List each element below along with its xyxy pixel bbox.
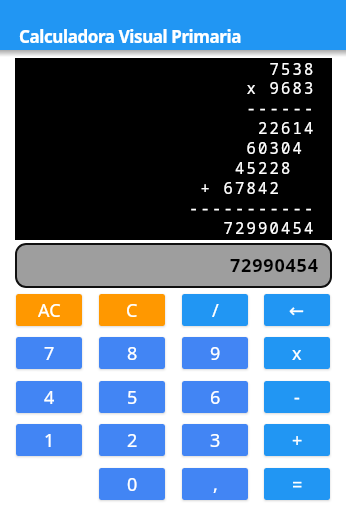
button[interactable]: 7 [16,337,82,369]
button[interactable]: 4 [16,381,82,413]
button[interactable]: 1 [16,424,82,456]
button[interactable]: 3 [182,424,248,456]
staticText: + [292,428,303,453]
staticText: 8 [127,341,138,366]
button[interactable]: 72990454 [15,243,332,288]
staticText: 5 [127,385,138,410]
button[interactable]: 9 [182,337,248,369]
staticText: 3 [210,428,221,453]
button[interactable]: - [264,381,330,413]
staticText: 6 [210,385,221,410]
staticText: 4 [44,385,55,410]
staticText: - [294,385,300,410]
staticText: 7538 x 9683 ------ 22614 60304 45228 + 6… [189,58,316,239]
button[interactable]: AC [16,294,82,326]
staticText: Calculadora Visual Primaria [19,25,241,48]
button[interactable]: 8 [99,337,165,369]
button[interactable]: 2 [99,424,165,456]
button[interactable]: , [182,468,248,500]
staticText: AC [38,298,61,323]
button[interactable]: 5 [99,381,165,413]
staticText: x [292,341,302,366]
staticText: 9 [210,341,221,366]
button[interactable]: + [264,424,330,456]
staticText: 1 [44,428,55,453]
button[interactable]: C [99,294,165,326]
staticText: / [212,298,219,323]
button[interactable]: 6 [182,381,248,413]
staticText: 2 [127,428,138,453]
staticText: 0 [127,472,138,497]
staticText: 72990454 [230,253,319,278]
button[interactable]: = [264,468,330,500]
staticText: C [126,298,138,323]
button[interactable]: ← [264,294,330,326]
staticText: , [213,472,218,497]
staticText: = [292,472,303,497]
staticText: 7 [44,341,55,366]
button[interactable]: 0 [99,468,165,500]
button[interactable]: x [264,337,330,369]
staticText: ← [289,300,305,321]
button[interactable]: / [182,294,248,326]
